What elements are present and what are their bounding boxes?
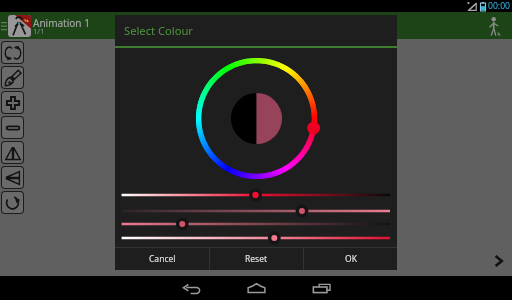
button[interactable]: Remove	[2, 117, 23, 138]
button[interactable]: Play	[2, 167, 23, 188]
button[interactable]: Flip	[2, 142, 23, 163]
button[interactable]: Cancel	[115, 248, 209, 270]
staticText: Select Colour	[124, 23, 193, 38]
button[interactable]: Refresh	[2, 42, 23, 63]
staticText: 1/1	[33, 26, 45, 36]
button[interactable]: Rotate	[2, 192, 23, 213]
button[interactable]: Menu	[0, 12, 7, 39]
button[interactable]: Reset	[210, 248, 303, 270]
button[interactable]: Add	[2, 92, 23, 113]
button[interactable]: Home	[224, 276, 288, 300]
button[interactable]: Brush	[2, 67, 23, 88]
staticText: 00:00	[488, 0, 510, 12]
button[interactable]: Recents	[289, 276, 353, 300]
staticText: Animation 1	[33, 16, 90, 30]
button[interactable]: Figure	[476, 12, 512, 39]
staticText: Reset	[245, 253, 268, 265]
staticText: OK	[345, 253, 357, 265]
staticText: Cancel	[149, 253, 176, 265]
button[interactable]: Back	[160, 276, 224, 300]
button[interactable]: OK	[304, 248, 397, 270]
button[interactable]: Next	[489, 252, 507, 270]
button[interactable]: App icon	[8, 15, 31, 37]
